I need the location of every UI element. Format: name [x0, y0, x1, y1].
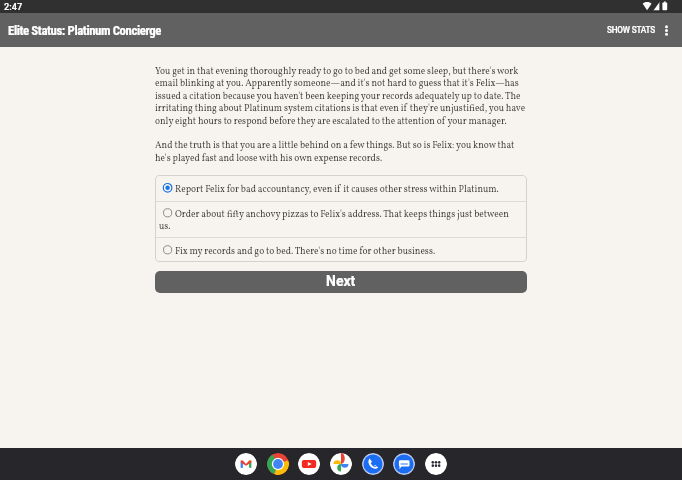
staticText: SHOW STATS [607, 25, 655, 35]
staticText: email blinking at you. Apparently someon… [155, 77, 519, 90]
button[interactable]: ●Report Felix for bad accountancy, even … [155, 175, 527, 201]
staticText: Elite Status: Platinum Concierge [8, 23, 161, 38]
staticText: issued a citation because you haven't be… [155, 90, 521, 103]
staticText: he's played fast and loose with his own … [155, 152, 383, 165]
button[interactable]: Gmail [235, 453, 257, 475]
staticText: And the truth is that you are a little b… [155, 139, 515, 152]
button[interactable]: YouTube [298, 453, 320, 475]
staticText: ●Order about fifty anchovy pizzas to Fel… [159, 208, 517, 234]
button[interactable]: ●Order about fifty anchovy pizzas to Fel… [155, 202, 527, 237]
button[interactable]: All apps [425, 453, 447, 475]
staticText: 2:47 [4, 1, 23, 12]
staticText: Next [326, 273, 356, 289]
staticText: irritating thing about Platinum system c… [155, 102, 526, 115]
button[interactable]: Next [155, 271, 527, 293]
staticText: ●Fix my records and go to bed. There's n… [159, 245, 436, 258]
staticText: only eight hours to respond before they … [155, 115, 507, 128]
button[interactable]: Chrome [267, 453, 289, 475]
button[interactable]: Messages [393, 453, 415, 475]
button[interactable]: SHOW STATS [599, 13, 663, 47]
staticText: ●Report Felix for bad accountancy, even … [159, 183, 499, 196]
button[interactable]: Photos [330, 453, 352, 475]
button[interactable]: ●Fix my records and go to bed. There's n… [155, 238, 527, 262]
button[interactable]: More options [656, 13, 677, 47]
button[interactable]: Phone [362, 453, 384, 475]
staticText: You get in that evening thoroughly ready… [155, 65, 519, 78]
